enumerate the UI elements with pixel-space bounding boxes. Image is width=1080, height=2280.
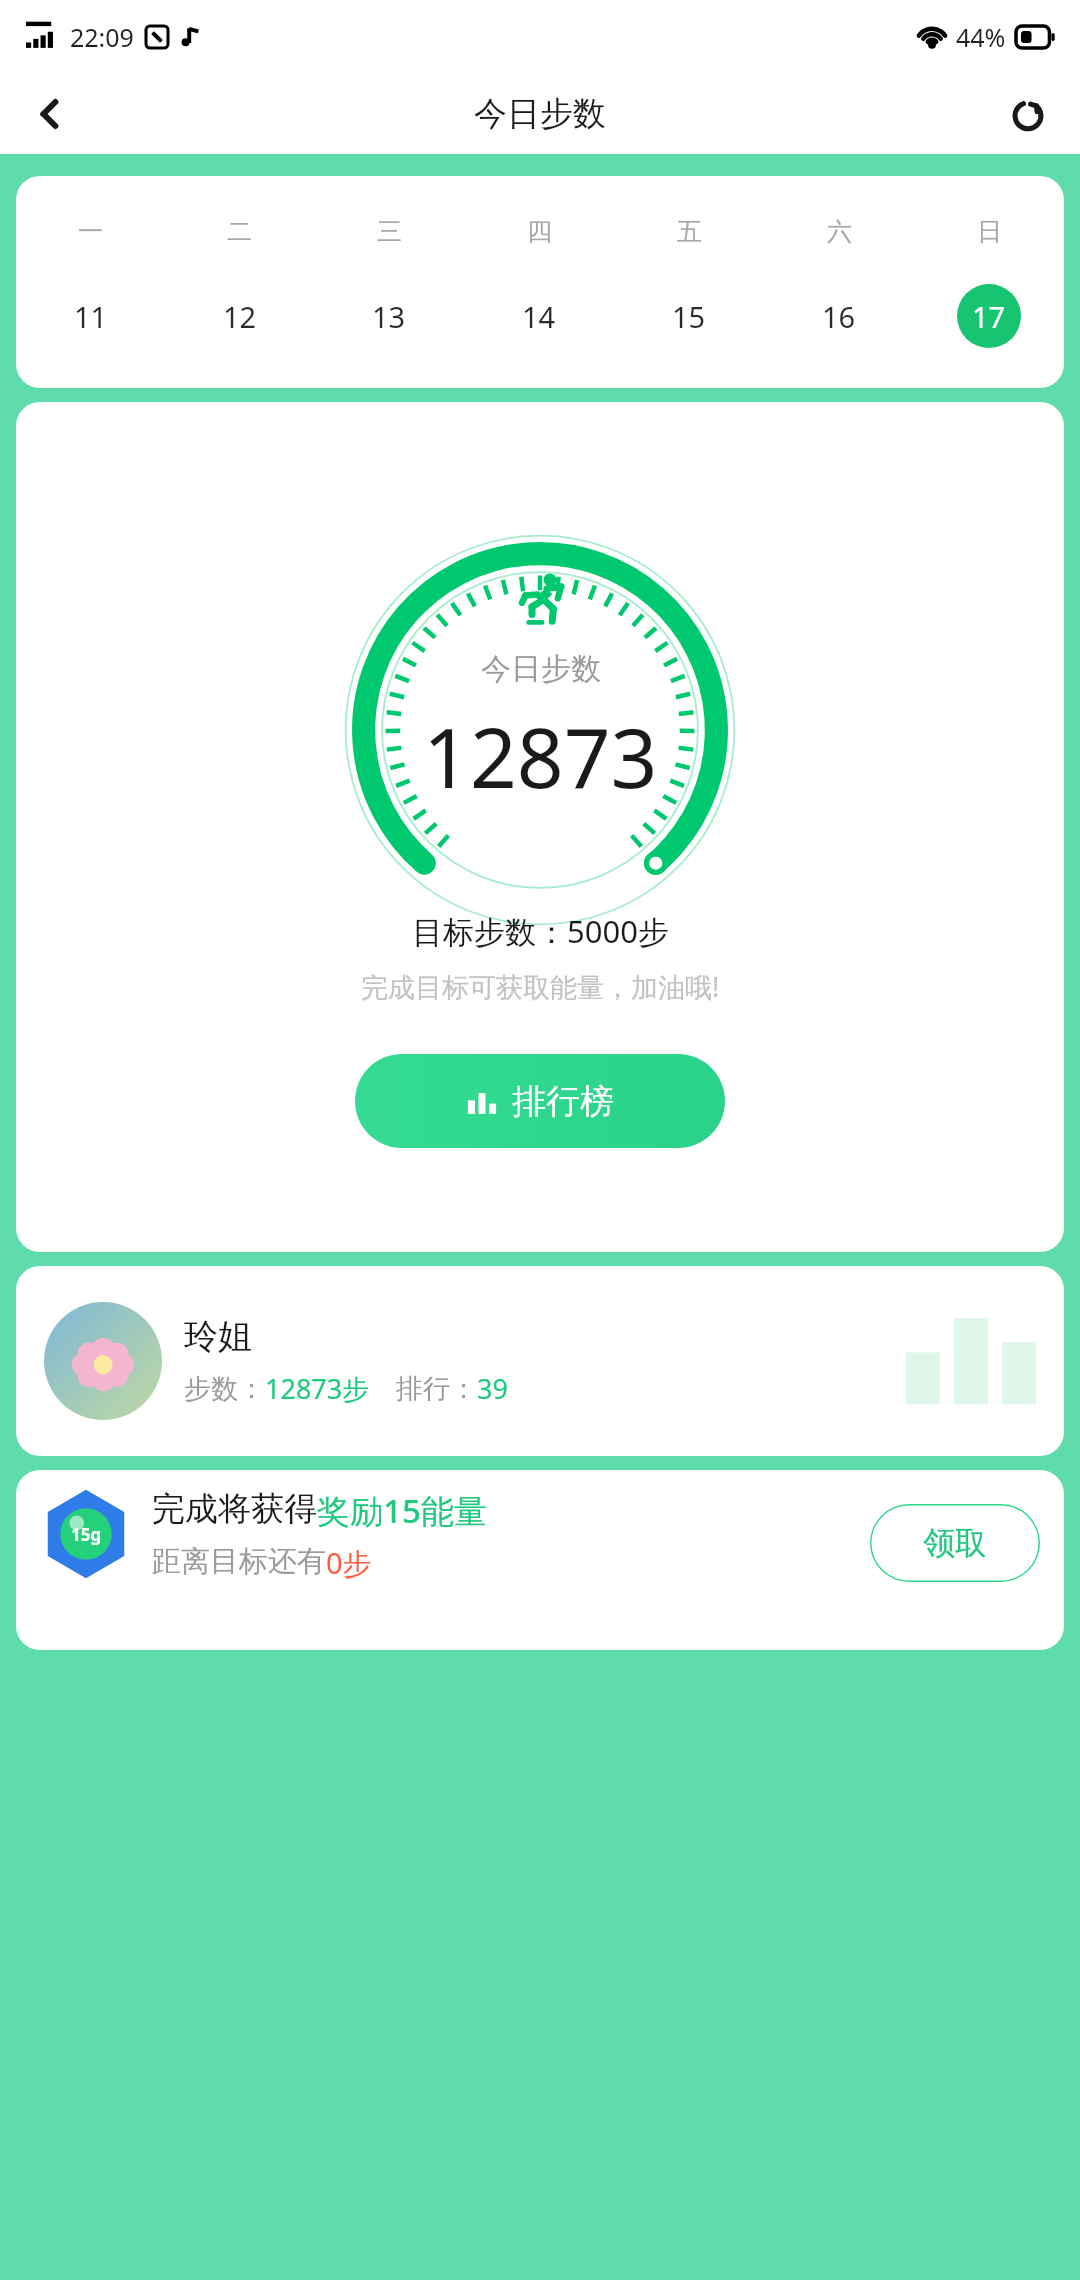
staticText: 排行： [396, 1372, 477, 1406]
staticText: 四 [527, 216, 552, 247]
staticText: 二 [227, 216, 252, 247]
button[interactable]: 15 [657, 284, 721, 348]
staticText: 17 [972, 297, 1006, 336]
staticText: 14 [522, 297, 556, 336]
staticText: 奖励15能量 [317, 1488, 487, 1533]
staticText: 三 [377, 216, 402, 247]
button[interactable]: 12 [208, 284, 272, 348]
staticText: 日 [977, 216, 1002, 247]
staticText: 五 [677, 216, 702, 247]
staticText: 完成将获得 [152, 1488, 317, 1530]
staticText: 领取 [923, 1523, 987, 1563]
staticText: 12 [223, 297, 257, 336]
button[interactable]: 11 [59, 284, 123, 348]
staticText: 一 [78, 216, 103, 247]
staticText: 44% [956, 20, 1006, 54]
staticText: 16 [822, 297, 856, 336]
staticText: 22:09 [70, 20, 134, 54]
button[interactable]: 13 [357, 284, 421, 348]
button[interactable]: Share [996, 82, 1060, 146]
staticText: 12873 [423, 700, 658, 812]
staticText: 距离目标还有 [152, 1543, 326, 1580]
staticText: 13 [372, 297, 406, 336]
staticText: 排行榜 [512, 1080, 614, 1123]
staticText: 今日步数 [481, 650, 601, 688]
button[interactable]: 领取 [870, 1504, 1040, 1582]
staticText: 15g [71, 1523, 102, 1546]
staticText: 六 [827, 216, 852, 247]
button[interactable]: 16 [807, 284, 871, 348]
staticText: 15 [672, 297, 706, 336]
staticText: 0步 [326, 1543, 372, 1583]
staticText: 完成目标可获取能量，加油哦! [361, 968, 720, 1005]
button[interactable]: 17 [957, 284, 1021, 348]
button[interactable]: 一 [16, 176, 1064, 388]
staticText: 12873步 [265, 1370, 370, 1407]
button[interactable]: Back [18, 82, 82, 146]
button[interactable]: 14 [507, 284, 571, 348]
button[interactable]: 15g [16, 1470, 1064, 1650]
button[interactable]: 排行榜 [355, 1054, 725, 1148]
staticText: 39 [477, 1370, 508, 1407]
staticText: 今日步数 [474, 93, 606, 135]
staticText: 目标步数：5000步 [412, 910, 669, 952]
staticText: 11 [74, 297, 108, 336]
button[interactable]: 玲姐 [16, 1266, 1064, 1456]
staticText: 步数： [184, 1372, 265, 1406]
staticText: 玲姐 [184, 1315, 252, 1358]
